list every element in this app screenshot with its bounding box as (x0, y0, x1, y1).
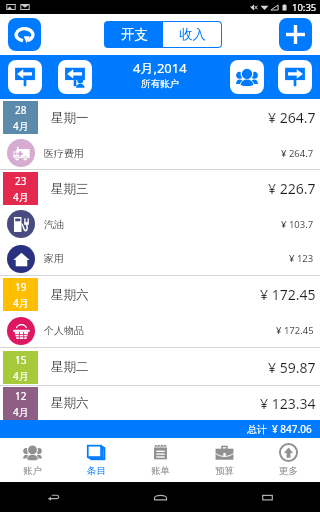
staticText: ¥ 847.06 (272, 422, 312, 436)
staticText: 星期六 (51, 287, 89, 303)
staticText: 15 (15, 353, 27, 367)
staticText: 4月 (13, 405, 29, 419)
staticText: 汽油 (44, 218, 64, 231)
staticText: 4月 (13, 190, 29, 204)
staticText: 条目 (87, 465, 106, 477)
button[interactable]: Next period (278, 60, 312, 94)
button[interactable]: 收入 (163, 22, 221, 47)
staticText: 账户 (23, 465, 42, 477)
staticText: 10:35 (292, 1, 317, 14)
button[interactable]: 28 (0, 99, 320, 136)
staticText: ¥ 264.7 (268, 108, 316, 127)
staticText: ¥ 226.7 (268, 179, 316, 198)
staticText: 28 (15, 103, 27, 117)
button[interactable]: 家用 (0, 241, 320, 276)
staticText: ¥ 123 (289, 252, 314, 265)
staticText: ¥ 264.7 (281, 147, 314, 160)
button[interactable]: Previous account (58, 60, 92, 94)
staticText: 4月 (13, 296, 29, 310)
staticText: ¥ 172.45 (276, 324, 314, 337)
staticText: 预算 (215, 465, 234, 477)
button[interactable]: 医疗费用 (0, 136, 320, 170)
staticText: 23 (15, 174, 27, 188)
staticText: ¥ 103.7 (281, 218, 314, 231)
button[interactable]: Previous period (8, 60, 42, 94)
staticText: 4月,2014 (133, 59, 187, 77)
staticText: 家用 (44, 252, 64, 265)
button[interactable]: Accounts (230, 60, 264, 94)
staticText: 星期一 (51, 110, 89, 126)
button[interactable]: 预算 (192, 438, 256, 482)
staticText: 星期六 (51, 395, 89, 411)
staticText: ¥ 123.34 (260, 394, 316, 413)
button[interactable]: 12 (0, 386, 320, 420)
staticText: 星期三 (51, 181, 89, 197)
staticText: 4月 (13, 369, 29, 383)
staticText: 19 (15, 280, 27, 294)
staticText: 12 (15, 389, 27, 403)
button[interactable]: 个人物品 (0, 313, 320, 348)
staticText: 更多 (279, 465, 298, 477)
button[interactable]: Recurring (8, 18, 41, 51)
staticText: 医疗费用 (44, 147, 84, 160)
button[interactable]: Add (279, 18, 312, 51)
staticText: 所有账户 (141, 78, 179, 90)
button[interactable]: 条目 (64, 438, 128, 482)
button[interactable]: 更多 (256, 438, 320, 482)
button[interactable]: 15 (0, 348, 320, 386)
button[interactable]: 账单 (128, 438, 192, 482)
staticText: ¥ 172.45 (260, 285, 316, 304)
staticText: 开支 (121, 26, 148, 43)
button[interactable]: 账户 (0, 438, 64, 482)
staticText: 收入 (179, 26, 206, 43)
button[interactable]: 23 (0, 170, 320, 207)
staticText: 4月 (13, 119, 29, 133)
staticText: 星期二 (51, 359, 89, 375)
staticText: 总计 (247, 423, 267, 436)
button[interactable]: 汽油 (0, 207, 320, 241)
staticText: 个人物品 (44, 324, 84, 337)
button[interactable]: 19 (0, 276, 320, 313)
button[interactable]: 开支 (105, 22, 163, 47)
staticText: ¥ 59.87 (268, 358, 316, 377)
staticText: 账单 (151, 465, 170, 477)
